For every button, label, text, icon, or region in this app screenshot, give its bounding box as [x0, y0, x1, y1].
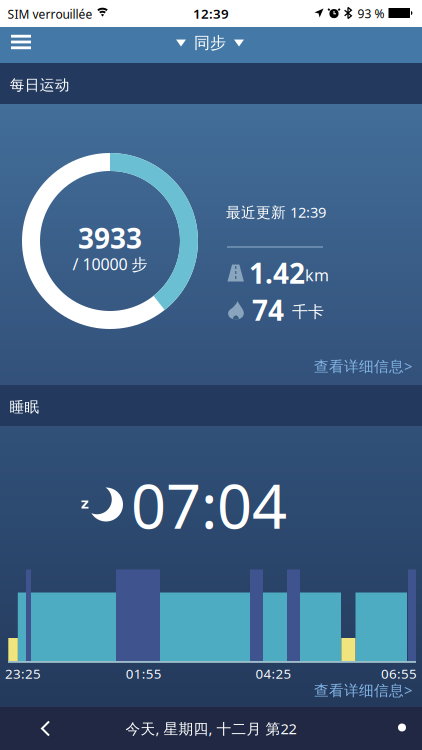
staticText: 74: [252, 291, 284, 329]
staticText: 查看详细信息>: [314, 356, 412, 376]
staticText: 23:25: [5, 665, 41, 682]
staticText: / 10000 步: [72, 253, 147, 275]
staticText: 07:04: [131, 464, 287, 546]
button[interactable]: Menu: [3, 24, 39, 60]
button[interactable]: 查看详细信息>: [314, 356, 412, 376]
button[interactable]: 查看详细信息>: [314, 680, 412, 700]
staticText: 93 %: [357, 5, 384, 21]
staticText: 最近更新 12:39: [226, 202, 326, 222]
button[interactable]: Previous day: [40, 720, 52, 736]
button[interactable]: 同步: [176, 33, 244, 53]
staticText: 12:39: [193, 5, 229, 22]
staticText: 01:55: [126, 665, 162, 682]
staticText: 睡眠: [9, 398, 39, 416]
staticText: 每日运动: [10, 76, 70, 94]
staticText: 06:55: [381, 665, 417, 682]
button[interactable]: 今天, 星期四, 十二月 第22: [125, 719, 296, 738]
staticText: 04:25: [255, 665, 291, 682]
staticText: SIM verrouillée: [7, 6, 92, 22]
button[interactable]: Today: [397, 722, 407, 732]
staticText: 3933: [78, 219, 142, 257]
staticText: 同步: [194, 33, 226, 53]
staticText: 千卡: [292, 302, 324, 322]
staticText: km: [305, 264, 329, 286]
staticText: 1.42: [249, 254, 305, 292]
staticText: 查看详细信息>: [314, 680, 412, 700]
staticText: 今天, 星期四, 十二月 第22: [125, 719, 296, 738]
